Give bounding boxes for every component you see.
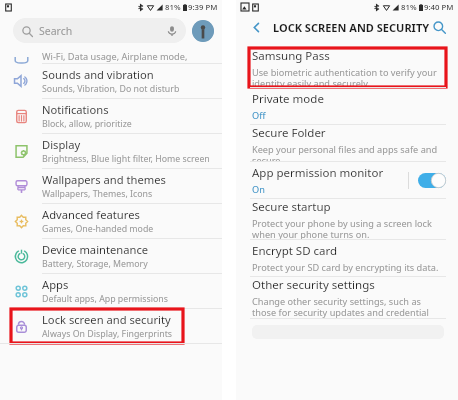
staticText: App permission monitor [252, 165, 384, 181]
staticText: 81% [401, 2, 417, 13]
staticText: Private mode [252, 91, 324, 107]
staticText: Wi-Fi, Data usage, Airplane mode, Locati… [42, 50, 222, 63]
button[interactable]: App permission monitor [236, 162, 458, 198]
button[interactable]: Search [430, 17, 448, 37]
staticText: 81% [165, 2, 181, 13]
staticText: Sounds, Vibration, Do not disturb [42, 83, 180, 95]
staticText: Advanced features [42, 207, 140, 222]
button[interactable]: Sounds and vibration [0, 64, 222, 98]
staticText: 9:39 PM [188, 2, 218, 13]
button[interactable]: Device maintenance [0, 239, 222, 273]
staticText: Brightness, Blue light filter, Home scre… [42, 153, 210, 165]
button[interactable]: Advanced features [0, 204, 222, 238]
button[interactable]: Display [0, 134, 222, 168]
button[interactable]: Notifications [0, 99, 222, 133]
staticText: Device maintenance [42, 242, 149, 257]
staticText: Protect your SD card by encrypting its d… [252, 261, 439, 274]
staticText: LOCK SCREEN AND SECURITY [273, 20, 430, 35]
button[interactable]: Private mode [236, 88, 458, 124]
staticText: Default apps, App permissions [42, 293, 169, 305]
staticText: Encrypt SD card [252, 243, 338, 259]
staticText: Battery, Storage, Memory [42, 258, 148, 270]
staticText: 9:40 PM [424, 2, 454, 13]
staticText: Other security settings [252, 277, 375, 293]
staticText: Protect your phone by using a screen loc… [252, 217, 442, 239]
button[interactable]: Secure Folder [236, 125, 458, 161]
button[interactable]: Wallpapers and themes [0, 169, 222, 203]
staticText: Secure Folder [252, 125, 326, 141]
staticText: Off [252, 109, 266, 122]
staticText: Wallpapers and themes [42, 172, 166, 187]
staticText: Always On Display, Fingerprints [42, 328, 173, 340]
staticText: Notifications [42, 102, 109, 117]
staticText: Games, One-handed mode [42, 223, 154, 235]
staticText: Wallpapers, Themes, Icons [42, 188, 153, 200]
button[interactable]: Back [246, 17, 266, 37]
button[interactable]: App permission monitor toggle [418, 173, 446, 188]
staticText: Change other security settings, such as … [252, 295, 442, 318]
staticText: Block, allow, prioritize [42, 118, 132, 130]
button[interactable]: Profile [192, 20, 214, 42]
button[interactable]: Other security settings [236, 277, 458, 318]
button[interactable]: Apps [0, 274, 222, 308]
button[interactable]: Wi-Fi, Data usage, Airplane mode, Locati… [0, 47, 222, 63]
staticText: Use biometric authentication to verify y… [252, 66, 442, 87]
staticText: Secure startup [252, 199, 331, 215]
button[interactable]: Lock screen and security [0, 309, 222, 343]
button[interactable]: Secure startup [236, 199, 458, 239]
button[interactable]: Samsung Pass [236, 48, 458, 87]
staticText: Samsung Pass [252, 48, 330, 64]
button[interactable]: Encrypt SD card [236, 240, 458, 276]
staticText: Apps [42, 277, 69, 292]
staticText: Display [42, 137, 81, 152]
button[interactable]: Search [13, 18, 186, 43]
staticText: Sounds and vibration [42, 67, 154, 82]
staticText: On [252, 183, 265, 196]
staticText: Lock screen and security [42, 312, 171, 327]
staticText: Keep your personal files and apps safe a… [252, 143, 442, 161]
staticText: Search [39, 24, 73, 38]
